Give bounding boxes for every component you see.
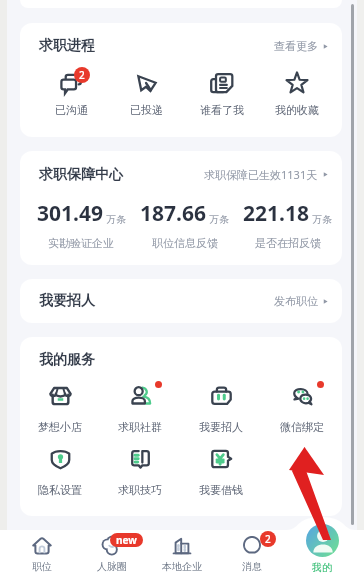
button[interactable]: 求职保障已生效1131天 <box>204 165 329 184</box>
staticText: 我要借钱 <box>199 483 243 497</box>
staticText: 我的服务 <box>39 351 95 369</box>
staticText: new <box>116 533 137 547</box>
button[interactable]: 职位 <box>7 535 77 573</box>
button[interactable]: 微信绑定 <box>261 385 342 434</box>
staticText: 发布职位 <box>274 294 318 308</box>
staticText: 我的收藏 <box>275 103 319 117</box>
button[interactable]: 已投递 <box>109 67 184 117</box>
staticText: 隐私设置 <box>38 483 82 497</box>
staticText: 求职技巧 <box>118 483 162 497</box>
button[interactable]: new <box>77 535 147 573</box>
staticText: 2 <box>265 532 271 546</box>
staticText: 求职社群 <box>118 420 162 434</box>
staticText: 本地企业 <box>162 560 202 573</box>
button[interactable]: 2 <box>33 67 109 117</box>
staticText: 求职保障已生效1131天 <box>204 167 318 182</box>
staticText: 人脉圈 <box>97 560 127 573</box>
staticText: 我要招人 <box>199 420 243 434</box>
button[interactable]: 隐私设置 <box>20 448 100 497</box>
button[interactable]: 我要招人 <box>20 279 342 323</box>
button[interactable]: 梦想小店 <box>20 385 100 434</box>
button[interactable]: 本地企业 <box>147 535 217 573</box>
button[interactable]: 301.49 <box>29 199 133 250</box>
staticText: 是否在招反馈 <box>255 236 321 250</box>
button[interactable]: 查看更多 <box>274 37 329 55</box>
staticText: 已沟通 <box>55 103 88 117</box>
button[interactable]: 221.18 <box>236 199 339 250</box>
staticText: 221.18 <box>243 199 309 228</box>
staticText: 求职进程 <box>39 37 95 55</box>
staticText: 消息 <box>242 560 262 573</box>
staticText: 职位信息反馈 <box>152 236 218 250</box>
staticText: 301.49 <box>37 199 103 228</box>
staticText: 求职保障中心 <box>39 166 123 184</box>
staticText: 万条 <box>106 213 126 226</box>
button[interactable]: 求职技巧 <box>100 448 180 497</box>
button[interactable]: 187.66 <box>133 199 236 250</box>
staticText: 2 <box>79 68 85 82</box>
staticText: 微信绑定 <box>280 420 324 434</box>
button[interactable]: 求职社群 <box>100 385 180 434</box>
staticText: 谁看了我 <box>200 103 244 117</box>
staticText: 万条 <box>312 213 332 226</box>
button[interactable]: 我要借钱 <box>180 448 261 497</box>
staticText: 我要招人 <box>39 292 95 310</box>
staticText: 职位 <box>32 560 52 573</box>
button[interactable]: 我要招人 <box>180 385 261 434</box>
staticText: 187.66 <box>140 199 206 228</box>
staticText: 实勘验证企业 <box>48 236 114 250</box>
staticText: 万条 <box>209 213 229 226</box>
staticText: 已投递 <box>130 103 163 117</box>
button[interactable]: 谁看了我 <box>184 67 259 117</box>
staticText: 梦想小店 <box>38 420 82 434</box>
button[interactable]: 我的 <box>287 531 357 577</box>
staticText: 我的 <box>312 561 332 574</box>
staticText: 查看更多 <box>274 39 318 53</box>
button[interactable]: 我的收藏 <box>259 67 334 117</box>
button[interactable]: 2 <box>217 535 287 573</box>
